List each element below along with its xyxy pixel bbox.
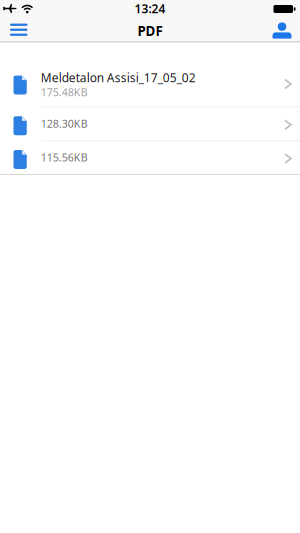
staticText: Meldetalon Assisi_17_05_02	[41, 70, 196, 86]
button[interactable]: Meldetalon Assisi_17_05_02	[0, 60, 300, 106]
button[interactable]: 128.30KB	[0, 107, 300, 140]
button[interactable]: Menu	[0, 18, 33, 41]
staticText: PDF	[137, 22, 162, 40]
staticText: 128.30KB	[41, 116, 88, 131]
staticText: 175.48KB	[41, 85, 88, 99]
button[interactable]: Account	[266, 18, 300, 41]
staticText: 13:24	[134, 0, 165, 16]
button[interactable]: 115.56KB	[0, 141, 300, 174]
staticText: 115.56KB	[41, 150, 88, 164]
